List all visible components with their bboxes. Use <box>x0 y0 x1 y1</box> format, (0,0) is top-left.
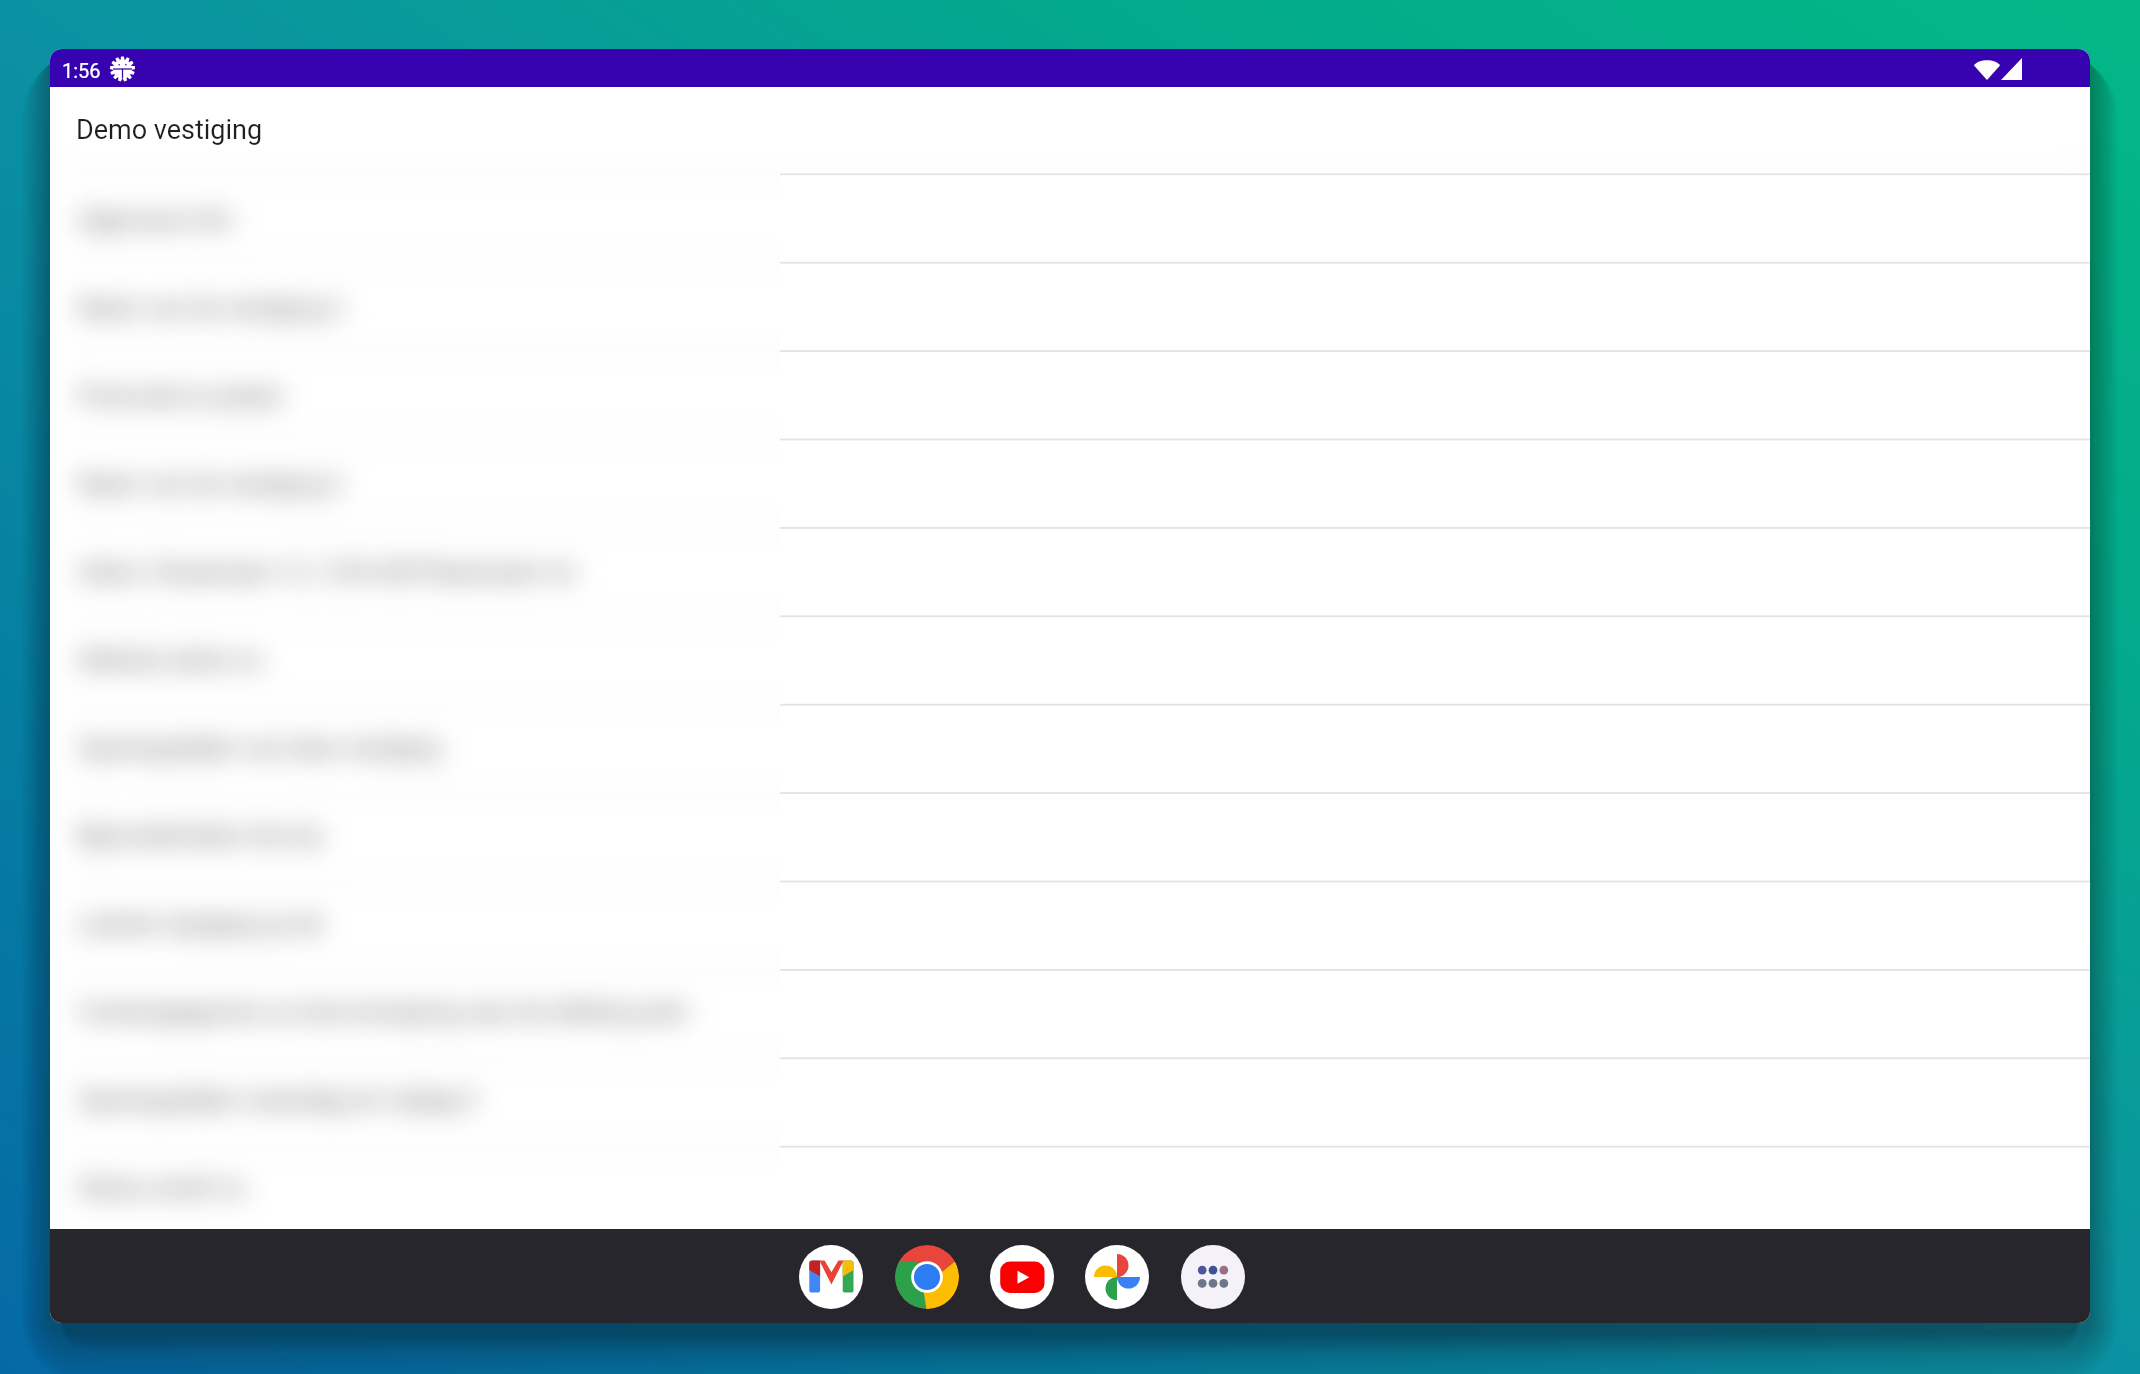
staticText: Laatste wijziging op de <box>78 910 323 938</box>
button[interactable]: Chrome <box>895 1245 959 1309</box>
button[interactable]: Gmail <box>799 1245 863 1309</box>
staticText: Openingstijden van deze vestiging <box>78 734 441 762</box>
button[interactable]: Google Photos <box>1085 1245 1149 1309</box>
button[interactable]: All apps <box>1181 1245 1245 1309</box>
staticText: Naam van de vestiging A <box>78 294 343 322</box>
staticText: Bijzonderheden hier bij <box>78 822 320 850</box>
staticText: Adres: Straatnaam 12, 1234 AB Plaatsnaam… <box>78 558 576 586</box>
staticText: Algemene info <box>78 206 233 234</box>
other: Developer options <box>110 56 135 82</box>
staticText: 1:56 <box>62 59 101 82</box>
other: Wi-Fi <box>1974 58 2000 80</box>
button[interactable]: YouTube <box>990 1245 1054 1309</box>
staticText: Demo vestiging <box>76 114 263 146</box>
button[interactable]: Demo vestiging <box>50 87 2090 173</box>
staticText: Contactgegevens en doorverwijzing naar d… <box>78 998 689 1026</box>
staticText: Naam van de vestiging A <box>78 470 343 498</box>
staticText: Openingstijden maandag tot vrijdag 9 <box>78 1086 477 1114</box>
other: Mobile signal <box>2001 58 2022 80</box>
staticText: Postcode en plaats <box>78 382 283 410</box>
staticText: Status actief nu <box>78 1174 246 1202</box>
staticText: Website adres nu <box>78 646 262 674</box>
